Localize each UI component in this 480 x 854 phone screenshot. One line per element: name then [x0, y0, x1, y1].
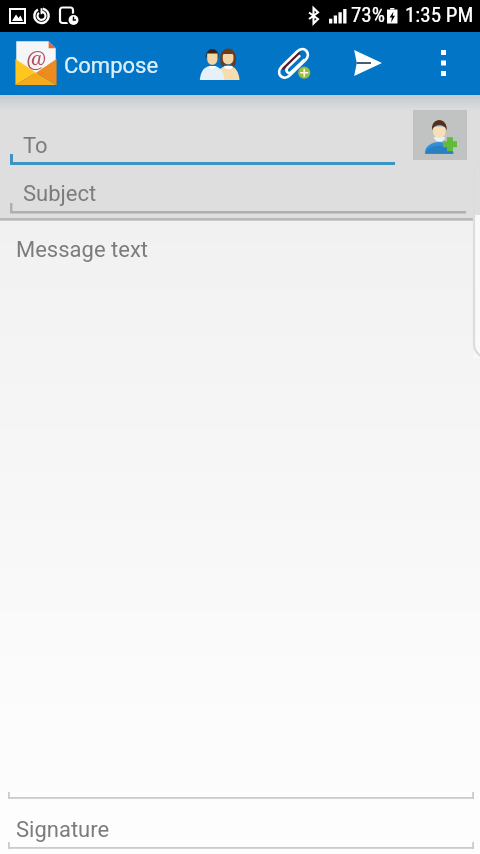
staticText: 73%	[351, 3, 386, 28]
staticText: To	[23, 133, 48, 159]
staticText: Signature	[16, 817, 110, 843]
staticText: 1:35 PM	[405, 3, 474, 28]
button[interactable]: Mail	[15, 40, 57, 85]
button[interactable]: More options	[419, 36, 467, 89]
staticText: Subject	[23, 181, 97, 207]
staticText: Compose	[64, 53, 159, 79]
button[interactable]: Add contact	[413, 110, 467, 160]
button[interactable]: Attach file	[269, 36, 317, 89]
staticText: @	[26, 43, 47, 73]
button[interactable]: Send	[343, 36, 391, 89]
staticText: Message text	[16, 237, 148, 263]
button[interactable]: Contacts	[188, 36, 251, 89]
